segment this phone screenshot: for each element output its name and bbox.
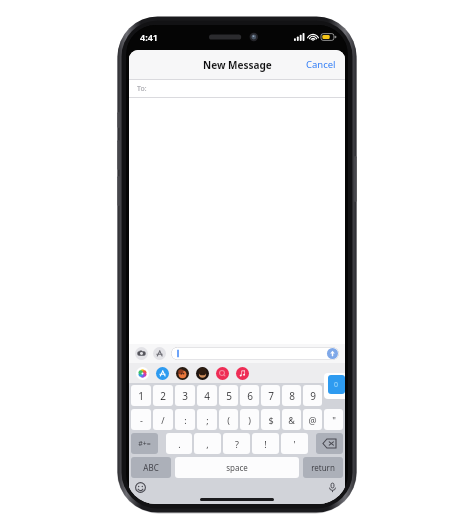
button[interactable]: 8	[282, 385, 301, 406]
staticText: 4:41	[140, 31, 158, 43]
staticText: 9	[310, 389, 316, 403]
button[interactable]: Animoji	[176, 367, 189, 380]
staticText: Cancel	[306, 58, 336, 71]
staticText: /	[161, 414, 165, 426]
button[interactable]: Music	[236, 367, 249, 380]
staticText: 5	[226, 389, 232, 403]
staticText: ;	[206, 414, 209, 426]
button[interactable]: Images	[216, 367, 229, 380]
button[interactable]: -	[131, 409, 151, 430]
button[interactable]: /	[153, 409, 173, 430]
staticText: 4	[204, 389, 210, 403]
staticText: #+=	[138, 439, 151, 449]
staticText: 2	[160, 389, 166, 403]
button[interactable]: To:	[129, 80, 345, 97]
button[interactable]: Emoji	[135, 482, 146, 493]
staticText: .	[178, 438, 181, 450]
button[interactable]: @	[303, 409, 322, 430]
button[interactable]: 7	[261, 385, 280, 406]
button[interactable]: ABC	[131, 457, 171, 478]
staticText: :	[184, 414, 187, 426]
button[interactable]: Send	[171, 347, 339, 360]
button[interactable]: #+=	[131, 433, 158, 454]
staticText: ,	[206, 438, 209, 450]
staticText: return	[311, 462, 335, 473]
staticText: space	[226, 462, 248, 473]
staticText: 8	[289, 389, 295, 403]
staticText: 3	[182, 389, 188, 403]
button[interactable]: Send	[327, 348, 338, 359]
button[interactable]: App Store	[153, 347, 166, 360]
button[interactable]: 0	[328, 375, 345, 394]
button[interactable]: "	[324, 409, 343, 430]
button[interactable]: space	[175, 457, 299, 478]
button[interactable]: 3	[175, 385, 195, 406]
button[interactable]: 2	[153, 385, 173, 406]
staticText: New Message	[203, 58, 272, 72]
button[interactable]: $	[261, 409, 280, 430]
staticText: &	[288, 414, 295, 426]
button[interactable]: Camera	[135, 347, 148, 360]
button[interactable]: (	[219, 409, 238, 430]
staticText: '	[293, 438, 296, 450]
staticText: !	[264, 438, 267, 450]
button[interactable]: Memoji	[196, 367, 209, 380]
button[interactable]	[324, 385, 343, 406]
button[interactable]: Delete	[316, 433, 343, 454]
staticText: 6	[247, 389, 253, 403]
staticText: 7	[268, 389, 274, 403]
button[interactable]: Photos	[136, 367, 149, 380]
staticText: -	[140, 414, 143, 426]
staticText: (	[227, 414, 230, 426]
button[interactable]: &	[282, 409, 301, 430]
staticText: ?	[235, 438, 239, 450]
button[interactable]: .	[166, 433, 192, 454]
staticText: 1	[138, 389, 144, 403]
button[interactable]: App Store	[156, 367, 169, 380]
button[interactable]: ?	[223, 433, 250, 454]
button[interactable]: 5	[219, 385, 238, 406]
button[interactable]: 9	[303, 385, 322, 406]
staticText: )	[248, 414, 251, 426]
button[interactable]: ;	[197, 409, 217, 430]
staticText: 0	[334, 380, 339, 390]
staticText: @	[308, 414, 317, 426]
staticText: $	[268, 414, 274, 426]
button[interactable]: :	[175, 409, 195, 430]
button[interactable]: Dictation	[327, 482, 338, 493]
button[interactable]: )	[240, 409, 259, 430]
staticText: To:	[137, 84, 147, 94]
button[interactable]: 6	[240, 385, 259, 406]
button[interactable]: '	[281, 433, 308, 454]
button[interactable]: Cancel	[297, 53, 345, 76]
staticText: "	[332, 414, 336, 426]
button[interactable]: return	[303, 457, 343, 478]
button[interactable]: ,	[194, 433, 221, 454]
staticText: ABC	[143, 462, 159, 473]
button[interactable]: 1	[131, 385, 151, 406]
button[interactable]: !	[252, 433, 279, 454]
button[interactable]: 4	[197, 385, 217, 406]
